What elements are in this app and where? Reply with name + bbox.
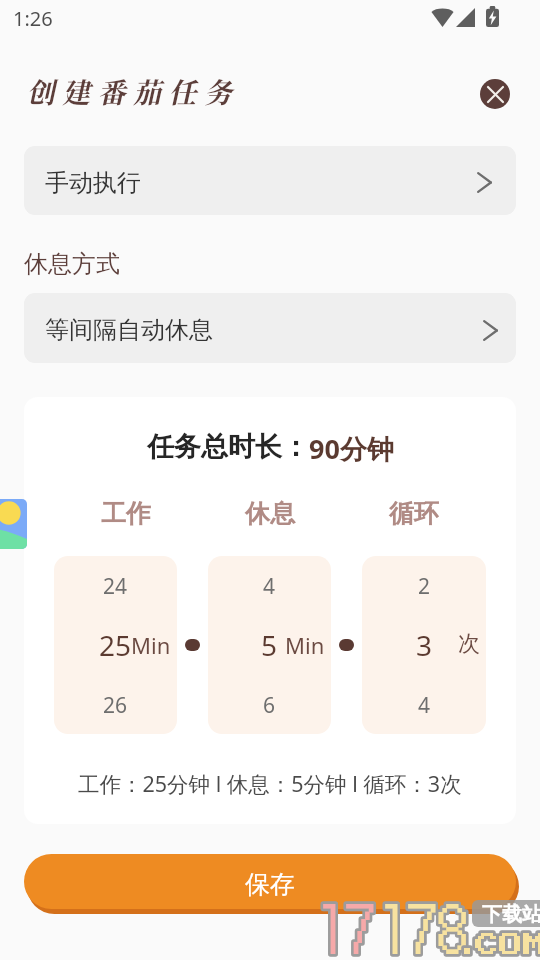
staticText: 4 — [418, 691, 431, 720]
staticText: 次 — [458, 630, 480, 658]
staticText: 2 — [418, 572, 431, 601]
staticText: COM — [475, 933, 540, 957]
staticText: 创建番茄任务 — [25, 71, 239, 111]
staticText: . — [458, 933, 482, 957]
staticText: 90分钟 — [309, 430, 394, 467]
button[interactable]: 保存 — [24, 854, 516, 909]
staticText: 1:26 — [13, 5, 53, 32]
button[interactable]: 手动执行 — [24, 146, 516, 215]
staticText: 循环 — [389, 498, 439, 529]
staticText: Min — [285, 630, 325, 660]
staticText: 26 — [103, 691, 128, 720]
staticText: 24 — [103, 572, 128, 601]
staticText: Min — [131, 630, 171, 660]
staticText: 6 — [263, 691, 276, 720]
staticText: 25 — [99, 626, 132, 664]
staticText: 4 — [263, 572, 276, 601]
staticText: 工作：25分钟 l 休息：5分钟 l 循环：3次 — [78, 769, 462, 798]
staticText: 17 — [314, 881, 376, 960]
staticText: 178 — [376, 881, 468, 960]
staticText: COM — [475, 933, 540, 957]
staticText: 3 — [416, 626, 433, 664]
staticText: 下载站 — [482, 902, 540, 927]
staticText: 任务总时长： — [147, 430, 309, 464]
staticText: 休息 — [245, 498, 295, 529]
staticText: 17 — [314, 881, 376, 960]
staticText: 等间隔自动休息 — [45, 315, 213, 345]
staticText: 手动执行 — [45, 168, 141, 198]
staticText: 5 — [261, 626, 278, 664]
staticText: 工作 — [101, 498, 151, 529]
staticText: 休息方式 — [24, 249, 120, 279]
staticText: 保存 — [245, 869, 295, 900]
button[interactable]: Close — [480, 79, 510, 109]
staticText: 178 — [376, 881, 468, 960]
button[interactable]: 等间隔自动休息 — [24, 293, 516, 363]
staticText: . — [458, 933, 482, 957]
